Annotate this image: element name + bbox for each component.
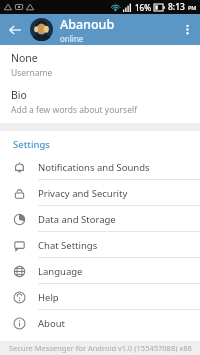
staticText: Notifications and Sounds: [38, 161, 150, 174]
staticText: Chat Settings: [38, 239, 98, 252]
staticText: About: [38, 317, 65, 330]
staticText: None: [11, 51, 38, 65]
button[interactable]: None: [0, 45, 200, 82]
staticText: Help: [38, 291, 59, 304]
button[interactable]: About: [0, 310, 200, 336]
staticText: Data and Storage: [38, 213, 116, 226]
staticText: online: [60, 33, 84, 44]
staticText: Add a few words about yourself: [11, 104, 138, 116]
button[interactable]: More options: [174, 14, 200, 45]
staticText: Privacy and Security: [38, 187, 128, 200]
staticText: PM: [188, 4, 197, 11]
button[interactable]: Notifications and Sounds: [0, 154, 200, 180]
staticText: Secure Messenger for Android v1.0 (15545…: [9, 343, 192, 353]
button[interactable]: Back: [0, 14, 30, 45]
button[interactable]: Help: [0, 284, 200, 310]
button[interactable]: Chat Settings: [0, 232, 200, 258]
staticText: 16%: [135, 2, 151, 13]
staticText: 8:13: [168, 1, 185, 13]
button[interactable]: Data and Storage: [0, 206, 200, 232]
button[interactable]: Privacy and Security: [0, 180, 200, 206]
staticText: Settings: [13, 138, 50, 151]
staticText: Abanoub: [60, 16, 115, 33]
staticText: Username: [11, 67, 53, 79]
staticText: Bio: [11, 88, 27, 102]
staticText: Language: [38, 265, 83, 278]
button[interactable]: Bio: [0, 82, 200, 119]
button[interactable]: Language: [0, 258, 200, 284]
